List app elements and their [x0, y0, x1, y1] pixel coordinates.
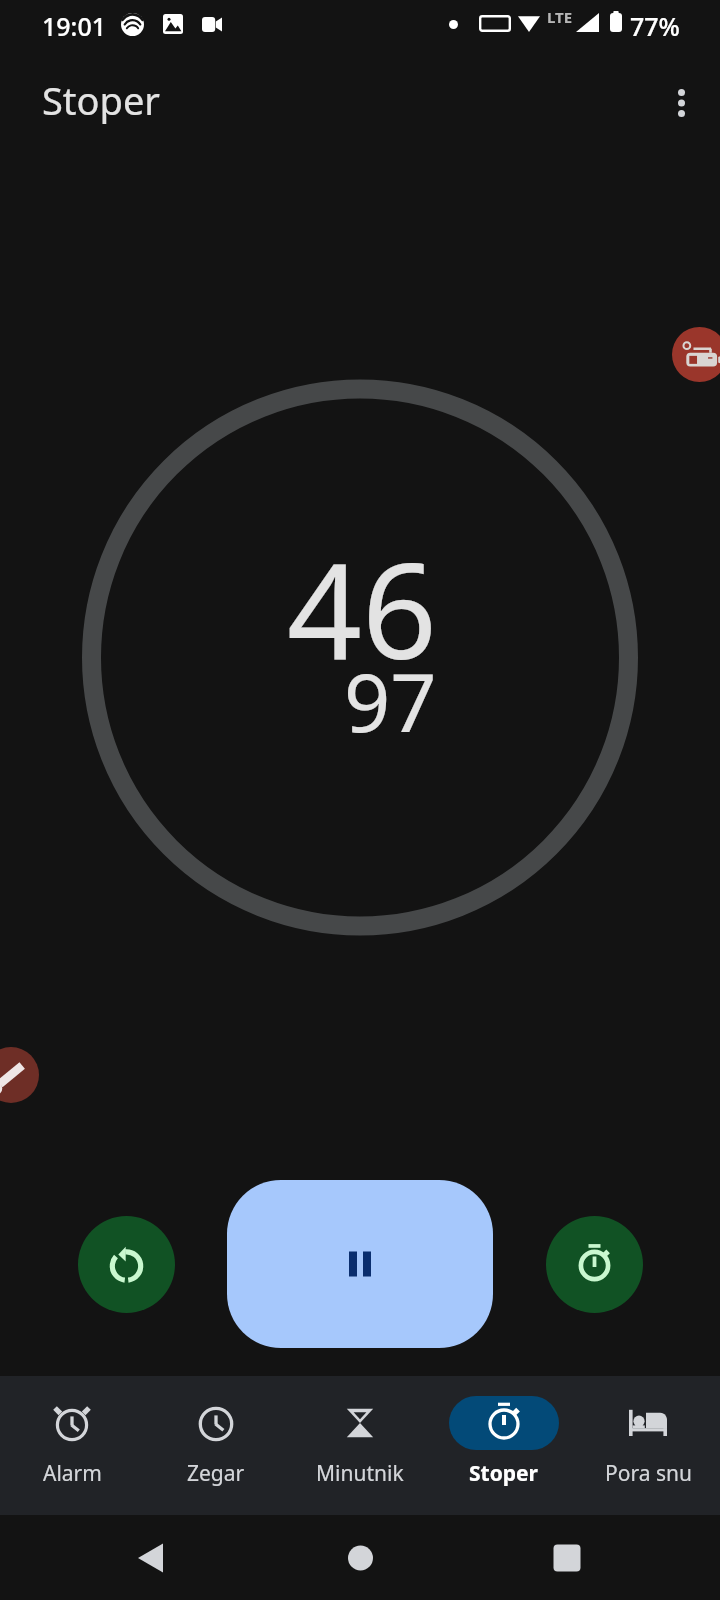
staticText: Minutnik	[316, 1459, 404, 1488]
button[interactable]: Stoper	[432, 1376, 576, 1515]
button[interactable]: Alarm	[0, 1376, 144, 1515]
button[interactable]: More options	[657, 79, 705, 127]
button[interactable]: Lap	[546, 1216, 643, 1313]
button[interactable]: Pora snu	[576, 1376, 720, 1515]
staticText: 19:01	[42, 9, 107, 43]
staticText: 97	[344, 645, 437, 755]
button[interactable]: Minutnik	[288, 1376, 432, 1515]
button[interactable]: Screen recorder	[672, 327, 720, 382]
button[interactable]: Pause	[227, 1180, 493, 1348]
staticText: 77%	[630, 9, 680, 43]
staticText: Zegar	[187, 1459, 245, 1488]
staticText: Pora snu	[605, 1459, 692, 1488]
staticText: Alarm	[43, 1459, 102, 1488]
button[interactable]: Markup	[0, 1047, 39, 1103]
button[interactable]: Zegar	[144, 1376, 288, 1515]
staticText: Stoper	[469, 1459, 539, 1488]
staticText: LTE	[547, 7, 573, 27]
staticText: Stoper	[42, 74, 161, 126]
staticText: 46	[287, 519, 437, 697]
button[interactable]: Reset	[78, 1216, 175, 1313]
